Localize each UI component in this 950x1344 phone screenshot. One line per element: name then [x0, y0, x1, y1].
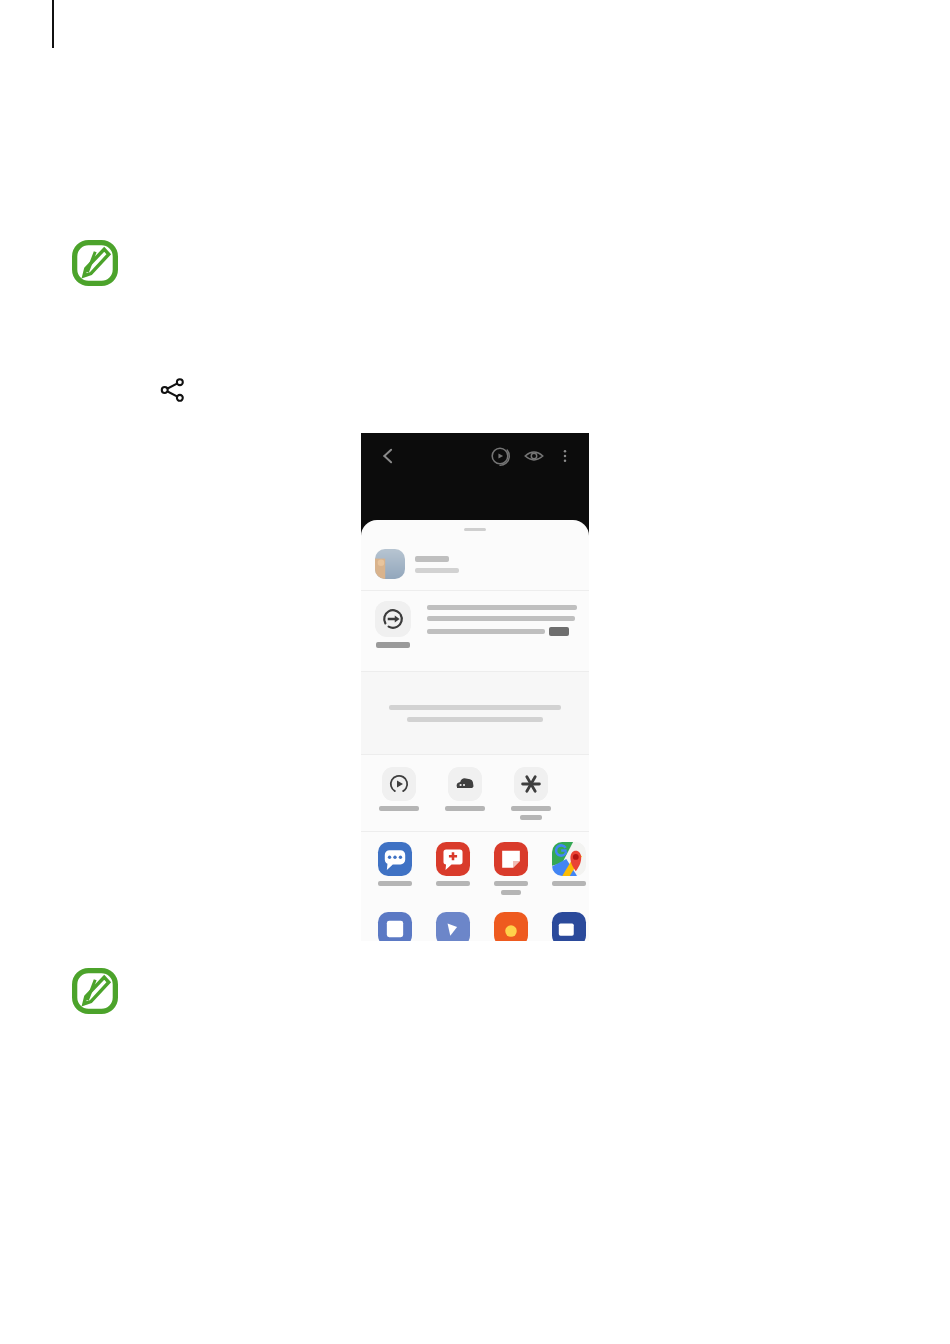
button[interactable] — [361, 538, 589, 590]
button[interactable]: App 2 — [491, 912, 531, 930]
button[interactable] — [441, 767, 489, 811]
button[interactable] — [375, 767, 423, 811]
button[interactable]: App 1 — [433, 912, 473, 930]
button[interactable]: Bixby Vision — [487, 443, 513, 469]
button[interactable] — [375, 842, 415, 886]
button[interactable] — [433, 842, 473, 886]
button[interactable]: Share — [158, 376, 186, 404]
button[interactable]: App 3 — [549, 912, 589, 930]
button[interactable]: Back — [375, 443, 401, 469]
button[interactable] — [507, 767, 555, 820]
button[interactable] — [549, 842, 589, 886]
button[interactable]: View details — [521, 443, 547, 469]
button[interactable]: App 0 — [375, 912, 415, 930]
button[interactable]: More options — [553, 444, 577, 468]
button[interactable] — [491, 842, 531, 895]
button[interactable]: Quick Share — [375, 601, 411, 637]
